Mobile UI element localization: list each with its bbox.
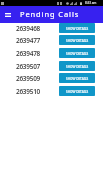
button[interactable]: SHOW DETAILS — [59, 23, 95, 33]
staticText: SHOW DETAILS — [66, 65, 89, 69]
staticText: SHOW DETAILS — [66, 39, 89, 43]
staticText: SHOW DETAILS — [66, 90, 89, 94]
staticText: 2639477 — [16, 36, 40, 45]
staticText: SHOW DETAILS — [66, 27, 89, 31]
staticText: Pending Calls — [20, 9, 80, 19]
staticText: 8:33 am — [85, 1, 97, 5]
button[interactable]: SHOW DETAILS — [59, 86, 95, 96]
button[interactable]: SHOW DETAILS — [59, 61, 95, 71]
button[interactable]: SHOW DETAILS — [59, 73, 95, 83]
staticText: SHOW DETAILS — [66, 77, 89, 81]
button[interactable]: SHOW DETAILS — [59, 35, 95, 45]
staticText: 2639478 — [16, 49, 40, 58]
staticText: 2639507 — [16, 62, 40, 71]
button[interactable]: SHOW DETAILS — [59, 48, 95, 58]
button[interactable]: Open navigation drawer — [2, 9, 13, 20]
staticText: SHOW DETAILS — [66, 52, 89, 56]
staticText: 2639510 — [16, 87, 40, 96]
staticText: 2639468 — [16, 24, 40, 33]
staticText: 2639509 — [16, 74, 40, 83]
